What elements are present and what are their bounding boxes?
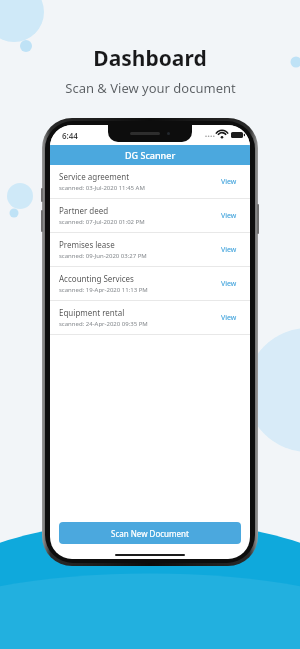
staticText: View (221, 279, 237, 289)
button[interactable]: View (217, 241, 241, 259)
staticText: Scan & View your document (65, 79, 236, 97)
button[interactable]: View (217, 207, 241, 225)
button[interactable]: View (217, 173, 241, 191)
button[interactable]: View (217, 275, 241, 293)
staticText: Service agreement (59, 171, 130, 182)
staticText: scanned: 09-Jun-2020 03:27 PM (59, 252, 147, 260)
staticText: Premises lease (59, 239, 115, 250)
staticText: Partner deed (59, 205, 109, 216)
staticText: Equipment rental (59, 307, 125, 318)
staticText: Accounting Services (59, 273, 134, 284)
staticText: Dashboard (93, 44, 207, 73)
staticText: scanned: 19-Apr-2020 11:13 PM (59, 286, 148, 294)
staticText: Scan New Document (111, 528, 189, 539)
staticText: View (221, 245, 237, 255)
staticText: View (221, 177, 237, 187)
staticText: scanned: 03-Jul-2020 11:45 AM (59, 184, 145, 192)
staticText: scanned: 24-Apr-2020 09:35 PM (59, 320, 148, 328)
staticText: View (221, 313, 237, 323)
button[interactable]: Scan New Document (59, 522, 241, 544)
staticText: View (221, 211, 237, 221)
staticText: DG Scanner (125, 149, 176, 161)
button[interactable]: Equipment rental (50, 301, 250, 334)
staticText: 6:44 (62, 130, 78, 141)
button[interactable]: Premises lease (50, 233, 250, 266)
button[interactable]: Accounting Services (50, 267, 250, 300)
button[interactable]: Partner deed (50, 199, 250, 232)
button[interactable]: Service agreement (50, 165, 250, 198)
staticText: scanned: 07-Jul-2020 01:02 PM (59, 218, 145, 226)
button[interactable]: View (217, 309, 241, 327)
